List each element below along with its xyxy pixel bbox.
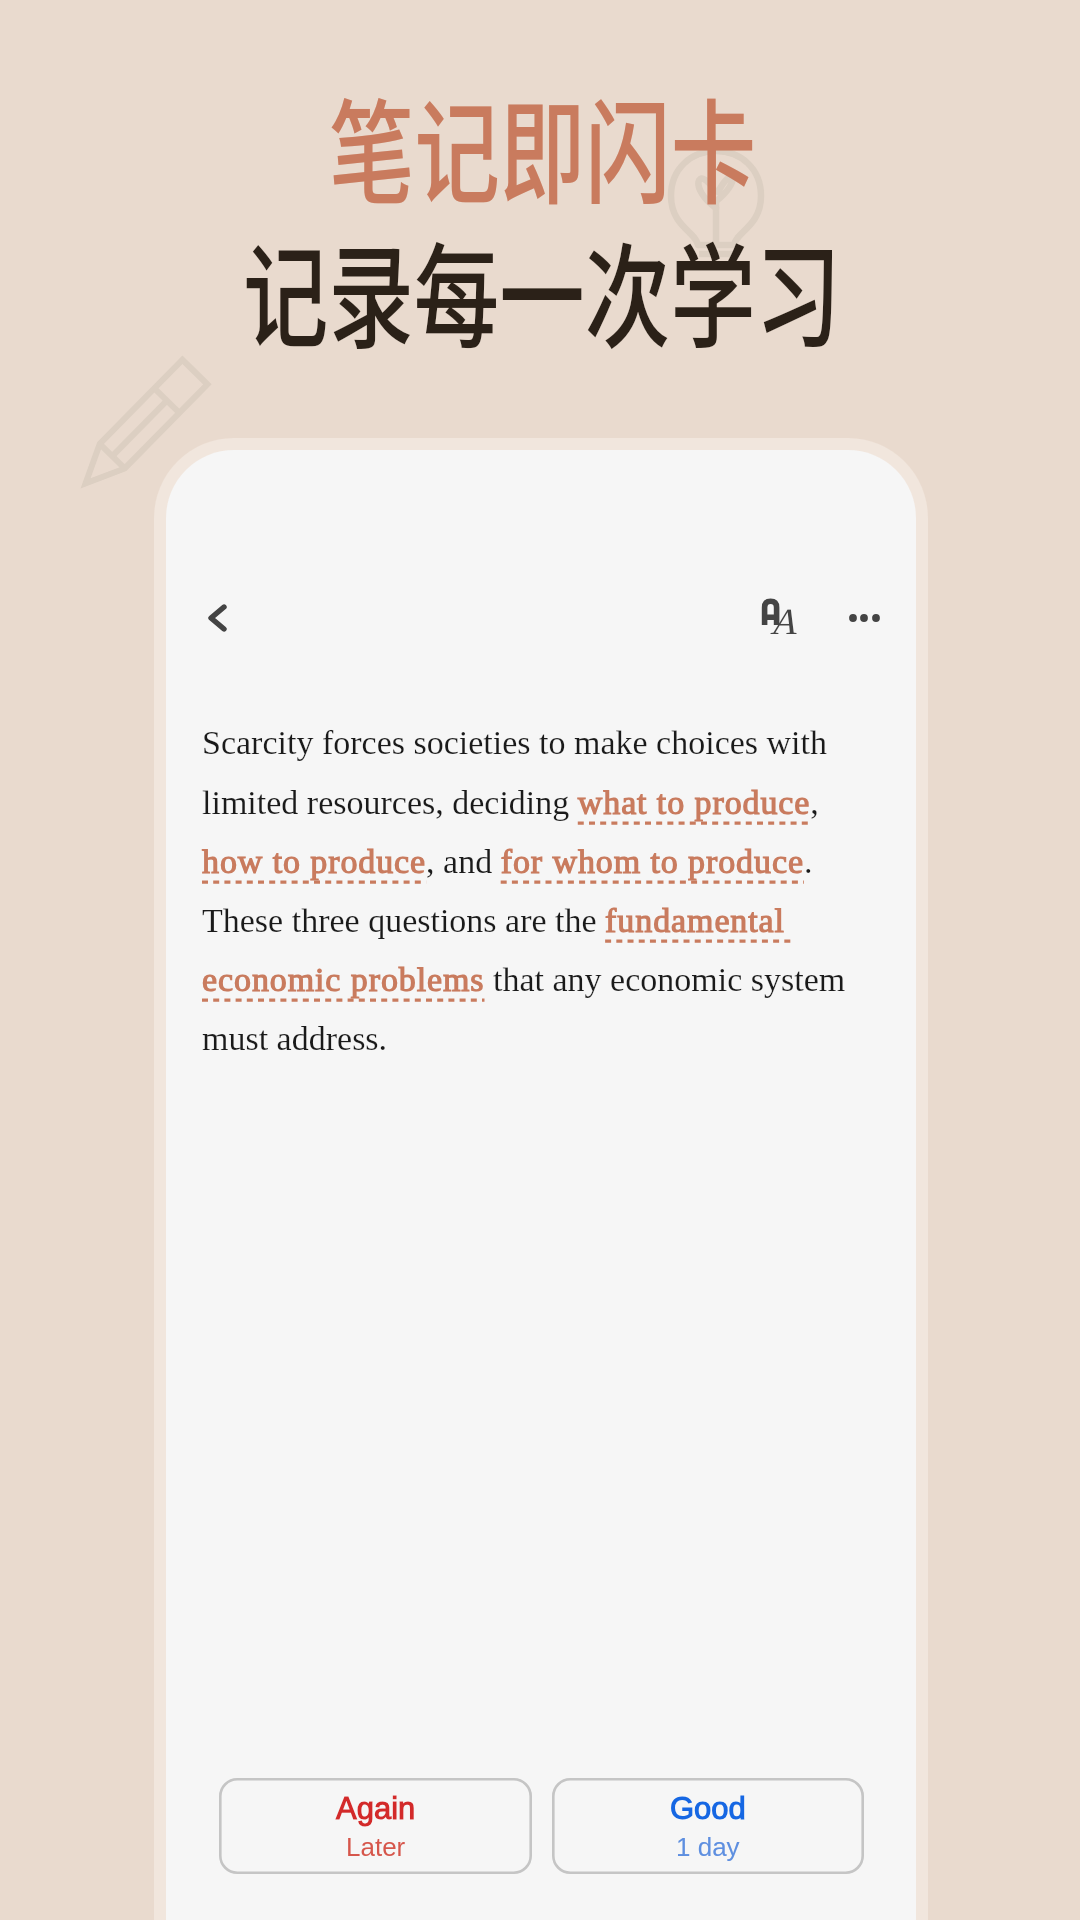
button[interactable]: Again: [219, 1778, 532, 1874]
staticText: 记录每一次学习: [243, 207, 841, 371]
staticText: Later: [346, 1832, 406, 1861]
staticText: 笔记即闪卡: [329, 63, 756, 227]
button[interactable]: Back: [179, 580, 255, 656]
staticText: 1 day: [676, 1832, 740, 1861]
button[interactable]: Text size: [722, 574, 810, 662]
button[interactable]: More options: [816, 580, 892, 656]
staticText: Scarcity forces societies to make choice…: [202, 724, 852, 1058]
staticText: Good: [670, 1791, 746, 1826]
staticText: Again: [336, 1791, 416, 1826]
staticText: A: [770, 601, 797, 642]
button[interactable]: Good: [552, 1778, 864, 1874]
